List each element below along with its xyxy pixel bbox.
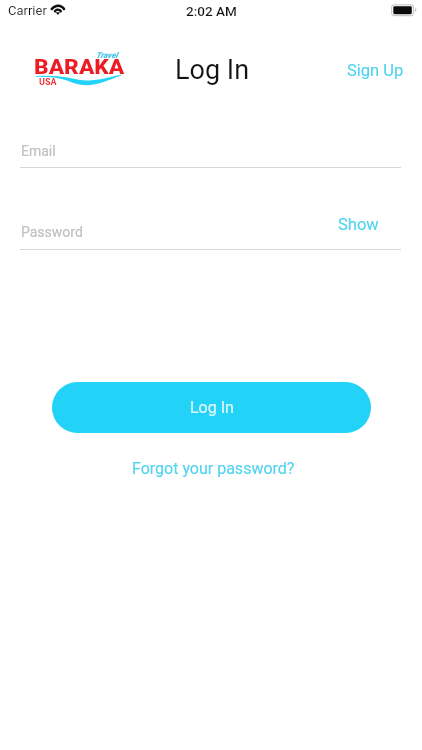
staticText: Log In: [190, 398, 234, 417]
staticText: 2:02 AM: [186, 3, 237, 19]
staticText: USA: [39, 77, 57, 88]
other: Wi-Fi signal: [50, 0, 67, 18]
button[interactable]: Forgot your password?: [120, 451, 307, 486]
staticText: Email: [21, 143, 56, 159]
button[interactable]: Show: [326, 207, 391, 242]
other: Battery: [391, 4, 417, 17]
button[interactable]: Sign Up: [335, 53, 416, 88]
staticText: BARAKA: [34, 55, 125, 80]
staticText: Sign Up: [347, 61, 404, 80]
staticText: Log In: [175, 54, 250, 86]
staticText: Forgot your password?: [132, 459, 295, 478]
staticText: Travel: [96, 51, 118, 60]
staticText: Carrier: [8, 3, 47, 18]
staticText: Show: [338, 215, 379, 234]
staticText: Password: [21, 224, 83, 240]
button[interactable]: Log In: [52, 382, 371, 433]
button[interactable]: Baraka Travel USA logo: [34, 48, 130, 92]
